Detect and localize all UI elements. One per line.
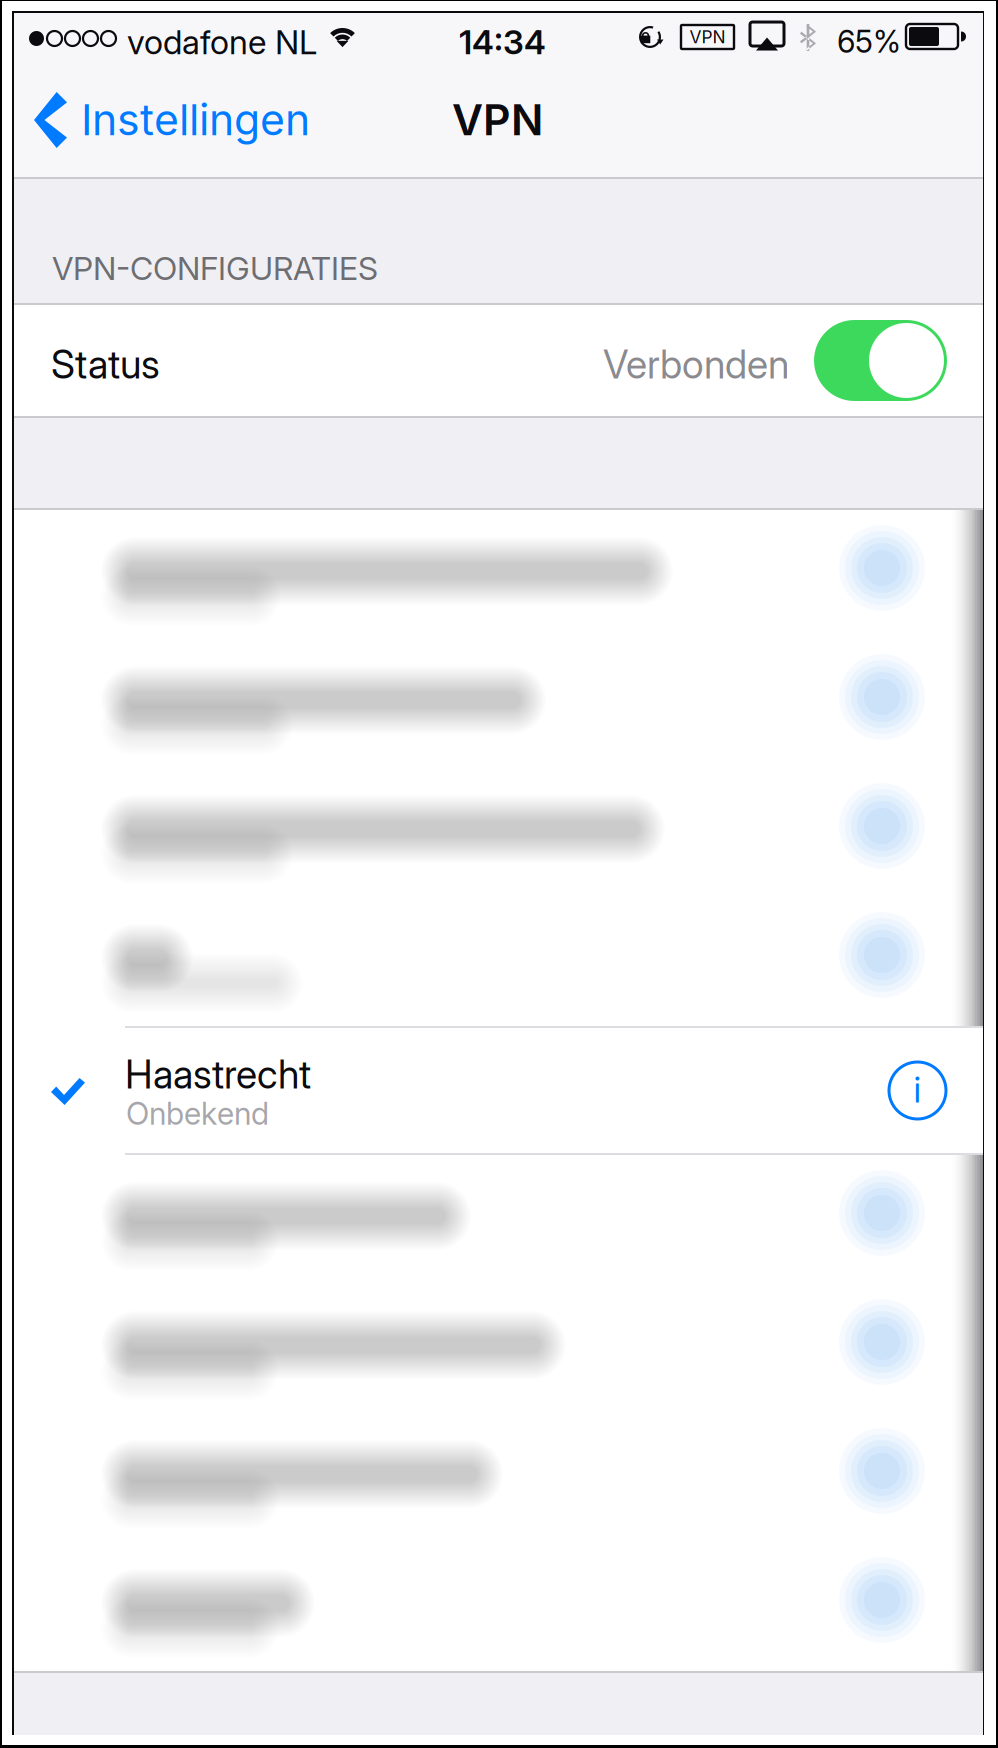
button[interactable]: Instellingen bbox=[14, 94, 324, 194]
staticText: VPN bbox=[689, 26, 725, 47]
staticText: Instellingen bbox=[81, 94, 310, 146]
staticText: Onbekend bbox=[126, 1095, 269, 1132]
staticText: i bbox=[913, 1069, 921, 1111]
staticText: VPN-CONFIGURATIES bbox=[52, 249, 378, 288]
staticText: vodafone NL bbox=[127, 22, 317, 62]
button[interactable] bbox=[14, 1413, 983, 1542]
staticText: Status bbox=[51, 341, 160, 388]
staticText: VPN bbox=[452, 94, 543, 146]
staticText: 14:34 bbox=[459, 22, 546, 62]
button[interactable]: Status bbox=[14, 305, 983, 418]
button[interactable] bbox=[14, 1155, 983, 1284]
button[interactable] bbox=[14, 1542, 983, 1671]
staticText: Haastrecht bbox=[125, 1051, 311, 1098]
button[interactable] bbox=[14, 897, 983, 1026]
staticText: Verbonden bbox=[603, 341, 789, 388]
button[interactable] bbox=[14, 768, 983, 897]
button[interactable]: Haastrecht bbox=[14, 1026, 983, 1155]
button[interactable] bbox=[14, 510, 983, 639]
staticText: 65% bbox=[837, 23, 901, 60]
button[interactable] bbox=[14, 639, 983, 768]
button[interactable] bbox=[14, 1284, 983, 1413]
